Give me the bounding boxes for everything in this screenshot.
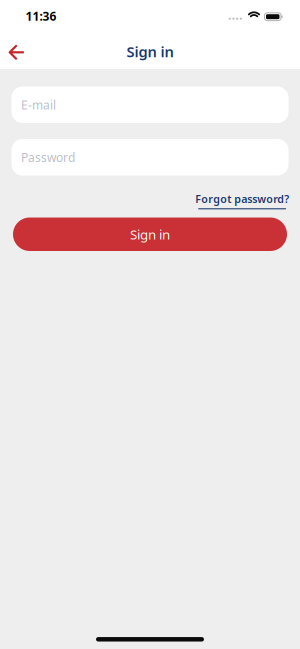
staticText: 11:36 bbox=[25, 8, 56, 24]
staticText: Sign in bbox=[126, 42, 173, 61]
staticText: E-mail bbox=[21, 97, 56, 113]
staticText: Forgot password? bbox=[195, 192, 289, 206]
button[interactable]: Sign in bbox=[13, 217, 287, 251]
button[interactable]: E-mail bbox=[11, 86, 288, 123]
staticText: Sign in bbox=[130, 225, 170, 243]
button[interactable]: Forgot password? bbox=[195, 192, 289, 209]
button[interactable] bbox=[1, 37, 31, 67]
button[interactable]: Password bbox=[11, 139, 288, 175]
staticText: Password bbox=[21, 149, 75, 165]
